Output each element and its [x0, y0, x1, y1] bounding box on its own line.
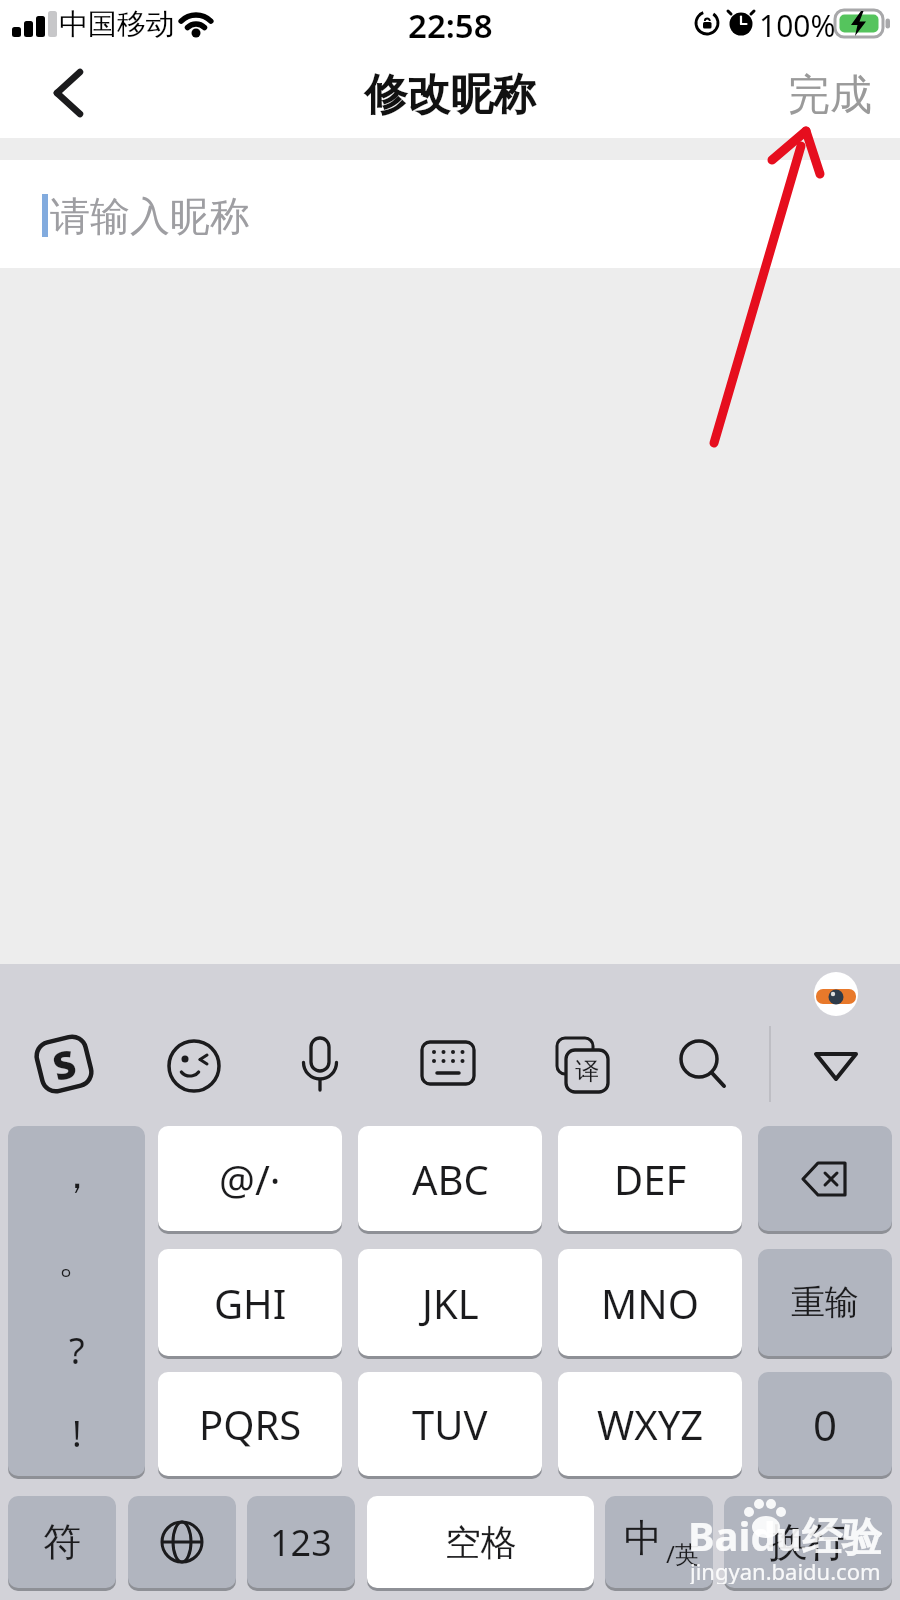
- staticText: 修改昵称: [364, 68, 536, 122]
- button[interactable]: 完成: [778, 66, 882, 124]
- staticText: 22:58: [408, 3, 493, 43]
- button[interactable]: GHI: [158, 1249, 342, 1356]
- staticText: GHI: [214, 1276, 287, 1330]
- staticText: DEF: [614, 1152, 687, 1206]
- staticText: 请输入昵称: [50, 191, 250, 241]
- staticText: Baidu经验: [688, 1508, 882, 1556]
- staticText: TUV: [412, 1397, 488, 1451]
- staticText: PQRS: [199, 1397, 302, 1451]
- button[interactable]: DEF: [558, 1126, 742, 1231]
- staticText: @/·: [219, 1152, 281, 1206]
- button[interactable]: [128, 1496, 236, 1588]
- staticText: jingyan.baidu.com: [690, 1556, 881, 1584]
- staticText: WXYZ: [597, 1397, 704, 1451]
- staticText: S: [47, 1036, 81, 1092]
- button[interactable]: [758, 1126, 892, 1231]
- staticText: 空格: [445, 1520, 517, 1565]
- staticText: 换行: [768, 1517, 848, 1567]
- staticText: 中: [624, 1514, 662, 1562]
- staticText: 123: [270, 1518, 332, 1567]
- button[interactable]: @/·: [158, 1126, 342, 1231]
- button[interactable]: 0: [758, 1372, 892, 1476]
- staticText: 。: [58, 1236, 96, 1284]
- staticText: ABC: [412, 1152, 489, 1206]
- staticText: 100%: [759, 5, 836, 43]
- button[interactable]: S: [28, 1028, 100, 1100]
- staticText: 中国移动: [59, 6, 175, 43]
- staticText: !: [72, 1409, 82, 1458]
- staticText: 0: [813, 1396, 838, 1453]
- staticText: MNO: [601, 1276, 699, 1330]
- button[interactable]: [300, 1036, 340, 1102]
- button[interactable]: TUV: [358, 1372, 542, 1476]
- staticText: 符: [43, 1518, 81, 1566]
- button[interactable]: [810, 1046, 862, 1090]
- staticText: 重输: [791, 1281, 859, 1324]
- staticText: 完成: [788, 69, 872, 122]
- button[interactable]: [166, 1038, 222, 1094]
- staticText: /英: [666, 1537, 699, 1570]
- button[interactable]: [676, 1038, 732, 1094]
- button[interactable]: 重输: [758, 1249, 892, 1356]
- button[interactable]: [605, 1496, 713, 1588]
- button[interactable]: MNO: [558, 1249, 742, 1356]
- button[interactable]: [420, 1040, 476, 1088]
- button[interactable]: ABC: [358, 1126, 542, 1231]
- staticText: ，: [58, 1151, 96, 1199]
- button[interactable]: [38, 62, 98, 122]
- staticText: JKL: [422, 1276, 479, 1330]
- button[interactable]: 译: [550, 1036, 612, 1098]
- button[interactable]: WXYZ: [558, 1372, 742, 1476]
- button[interactable]: PQRS: [158, 1372, 342, 1476]
- button[interactable]: 换行: [724, 1496, 892, 1588]
- button[interactable]: JKL: [358, 1249, 542, 1356]
- button[interactable]: 123: [247, 1496, 355, 1588]
- button[interactable]: 空格: [367, 1496, 594, 1588]
- staticText: 译: [575, 1056, 599, 1086]
- staticText: ?: [69, 1326, 85, 1375]
- button[interactable]: [8, 1126, 145, 1476]
- button[interactable]: [0, 160, 900, 268]
- button[interactable]: 符: [8, 1496, 116, 1588]
